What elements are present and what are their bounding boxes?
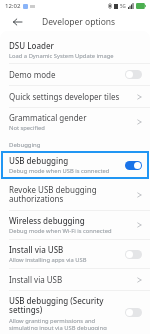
- staticText: Revoke USB debugging authorizations: [9, 184, 133, 205]
- staticText: Debug mode when Wi-Fi is connected: [9, 227, 112, 235]
- staticText: DSU Loader: [9, 40, 54, 51]
- staticText: USB debugging (Security settings): [9, 295, 121, 316]
- staticText: 5G: [120, 3, 126, 9]
- button[interactable]: Back: [9, 13, 26, 30]
- button[interactable]: Wireless debugging: [0, 211, 150, 239]
- button[interactable]: Grammatical gender: [0, 108, 150, 136]
- button[interactable]: Demo mode: [0, 64, 150, 85]
- button[interactable]: USB debugging security settings toggle: [125, 308, 142, 317]
- staticText: Allow installing apps via USB: [9, 256, 87, 264]
- staticText: Install via USB: [9, 274, 63, 285]
- staticText: Quick settings developer tiles: [9, 91, 120, 102]
- button[interactable]: Install via USB toggle: [125, 250, 142, 259]
- button[interactable]: Install via USB: [0, 240, 150, 268]
- button[interactable]: Quick settings developer tiles: [0, 86, 150, 107]
- button[interactable]: Install via USB: [0, 269, 150, 290]
- button[interactable]: USB debugging toggle: [125, 161, 142, 170]
- staticText: Debugging: [9, 141, 41, 149]
- staticText: Allow granting permissions and simulatin…: [9, 317, 121, 330]
- staticText: Demo mode: [9, 69, 56, 80]
- staticText: Load a Dynamic System Update image: [9, 52, 114, 60]
- button[interactable]: Demo mode toggle: [125, 70, 142, 79]
- button[interactable]: Revoke USB debugging authorizations: [0, 179, 150, 210]
- staticText: USB debugging: [9, 155, 69, 166]
- staticText: Wireless debugging: [9, 215, 85, 226]
- staticText: 12:02: [5, 2, 21, 10]
- button[interactable]: DSU Loader: [0, 38, 150, 63]
- staticText: Install via USB: [9, 244, 64, 255]
- button[interactable]: USB debugging: [1, 151, 149, 179]
- button[interactable]: USB debugging (Security settings): [0, 291, 150, 334]
- staticText: Grammatical gender: [9, 112, 87, 123]
- staticText: Debug mode when USB is connected: [9, 167, 110, 175]
- staticText: Developer options: [42, 16, 116, 28]
- staticText: Not specified: [9, 124, 45, 132]
